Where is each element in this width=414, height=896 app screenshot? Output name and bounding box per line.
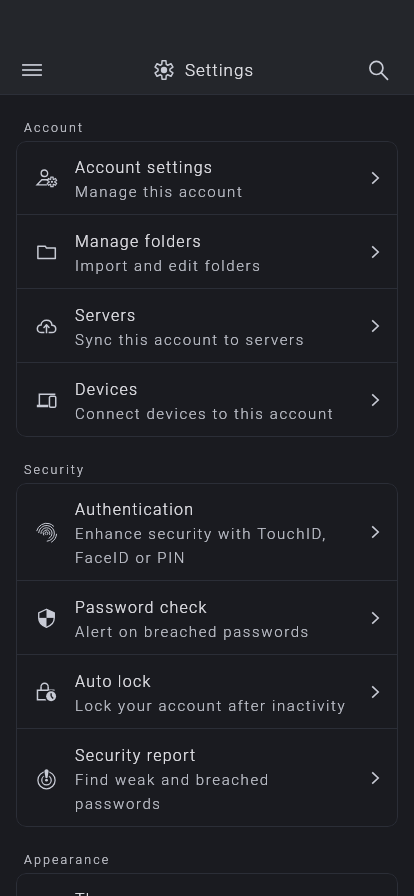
- button[interactable]: Search: [356, 48, 400, 92]
- staticText: Auto lock: [75, 668, 152, 692]
- button[interactable]: Password check: [16, 581, 398, 655]
- staticText: Security report: [75, 742, 197, 766]
- staticText: Devices: [75, 376, 139, 400]
- button[interactable]: Manage folders: [16, 215, 398, 289]
- button[interactable]: Authentication: [16, 483, 398, 581]
- staticText: Password check: [75, 594, 208, 618]
- button[interactable]: Account settings: [16, 141, 398, 215]
- staticText: Enhance security with TouchID, FaceID or…: [75, 520, 353, 568]
- staticText: Account: [24, 117, 85, 136]
- staticText: Account settings: [75, 154, 214, 178]
- staticText: Manage this account: [75, 178, 244, 202]
- staticText: Lock your account after inactivity: [75, 692, 347, 716]
- staticText: Connect devices to this account: [75, 400, 335, 424]
- staticText: Servers: [75, 302, 137, 326]
- staticText: Manage folders: [75, 228, 202, 252]
- staticText: Import and edit folders: [75, 252, 262, 276]
- staticText: Authentication: [75, 496, 195, 520]
- button[interactable]: Theme: [16, 873, 398, 896]
- button[interactable]: Security report: [16, 729, 398, 827]
- staticText: Appearance: [24, 849, 111, 868]
- button[interactable]: Menu: [10, 48, 54, 92]
- staticText: Sync this account to servers: [75, 326, 305, 350]
- staticText: Security: [24, 459, 85, 478]
- staticText: Find weak and breached passwords: [75, 766, 353, 814]
- button[interactable]: Devices: [16, 363, 398, 437]
- button[interactable]: Servers: [16, 289, 398, 363]
- staticText: Theme: [75, 886, 131, 896]
- staticText: Alert on breached passwords: [75, 618, 310, 642]
- button[interactable]: Auto lock: [16, 655, 398, 729]
- staticText: Settings: [185, 60, 255, 80]
